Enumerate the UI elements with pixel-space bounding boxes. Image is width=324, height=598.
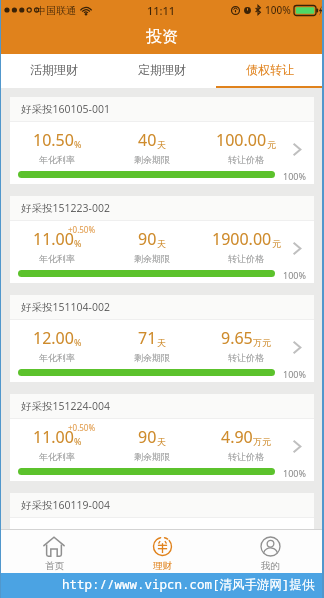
staticText: 转让价格 xyxy=(228,451,264,462)
button[interactable]: 理财 xyxy=(108,530,216,573)
staticText: 4.90 xyxy=(221,426,253,448)
staticText: 9.65 xyxy=(221,327,253,349)
staticText: 剩余期限 xyxy=(134,253,170,264)
staticText: 天 xyxy=(157,238,166,249)
staticText: 90 xyxy=(138,228,157,250)
staticText: 好采投151224-004 xyxy=(21,399,110,413)
staticText: 剩余期限 xyxy=(134,154,170,165)
staticText: 11.00 xyxy=(33,228,74,250)
button[interactable]: 好采投151224-004 xyxy=(10,394,314,481)
staticText: 理财 xyxy=(153,560,172,572)
other: 查看详情 xyxy=(292,221,314,270)
other: 查看详情 xyxy=(292,419,314,468)
staticText: 好采投151223-002 xyxy=(21,201,110,215)
staticText: 10.50 xyxy=(33,129,74,151)
staticText: 投资 xyxy=(146,27,178,47)
other: 查看详情 xyxy=(292,320,314,369)
staticText: 100% xyxy=(283,269,306,281)
staticText: 年化利率 xyxy=(39,253,75,264)
button[interactable]: 好采投160119-004 xyxy=(10,493,314,529)
staticText: 剩余期限 xyxy=(134,352,170,363)
button[interactable]: 定期理财 xyxy=(108,54,216,88)
staticText: % xyxy=(74,336,82,348)
staticText: % xyxy=(74,435,82,447)
staticText: 债权转让 xyxy=(246,62,294,77)
staticText: 100% xyxy=(283,368,306,380)
staticText: 我的 xyxy=(261,560,280,572)
staticText: 定期理财 xyxy=(138,62,186,77)
staticText: 活期理财 xyxy=(30,62,78,77)
staticText: 12.00 xyxy=(33,327,74,349)
staticText: 转让价格 xyxy=(228,154,264,165)
staticText: 元 xyxy=(267,139,276,150)
button[interactable]: 好采投160105-001 xyxy=(10,97,314,184)
button[interactable]: 债权转让 xyxy=(216,54,324,88)
staticText: 天 xyxy=(157,337,166,348)
button[interactable]: 好采投151223-002 xyxy=(10,196,314,283)
staticText: 40 xyxy=(138,129,157,151)
staticText: 好采投160119-004 xyxy=(21,498,110,512)
staticText: 万元 xyxy=(253,436,271,447)
staticText: 好采投160105-001 xyxy=(21,102,110,116)
staticText: 90 xyxy=(138,426,157,448)
button[interactable]: 首页 xyxy=(0,530,108,573)
button[interactable]: 我的 xyxy=(216,530,324,573)
staticText: 100.00 xyxy=(216,129,267,151)
staticText: 100% xyxy=(283,170,306,182)
staticText: 100% xyxy=(265,3,291,17)
staticText: 首页 xyxy=(45,560,64,572)
staticText: 天 xyxy=(157,139,166,150)
staticText: 元 xyxy=(272,238,281,249)
staticText: 100% xyxy=(283,467,306,479)
staticText: 1900.00 xyxy=(212,228,272,250)
staticText: 天 xyxy=(157,436,166,447)
staticText: 71 xyxy=(138,327,157,349)
staticText: % xyxy=(74,237,82,249)
staticText: +0.50% xyxy=(68,224,96,235)
staticText: 好采投151104-002 xyxy=(21,300,110,314)
staticText: 11.00 xyxy=(33,426,74,448)
staticText: 年化利率 xyxy=(39,154,75,165)
staticText: 万元 xyxy=(253,337,271,348)
staticText: % xyxy=(74,138,82,150)
button[interactable]: 好采投151104-002 xyxy=(10,295,314,382)
other: 查看详情 xyxy=(292,122,314,171)
staticText: 年化利率 xyxy=(39,451,75,462)
staticText: 转让价格 xyxy=(228,352,264,363)
button[interactable]: 活期理财 xyxy=(0,54,108,88)
staticText: http://www.vipcn.com[清风手游网]提供 xyxy=(62,576,315,593)
staticText: 剩余期限 xyxy=(134,451,170,462)
staticText: 11:11 xyxy=(147,3,176,18)
staticText: 中国联通 xyxy=(36,4,76,17)
staticText: 转让价格 xyxy=(228,253,264,264)
staticText: 年化利率 xyxy=(39,352,75,363)
staticText: +0.50% xyxy=(68,422,96,433)
